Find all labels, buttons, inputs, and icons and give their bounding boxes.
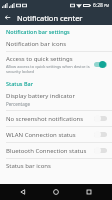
staticText: Notification bar settings xyxy=(6,28,70,35)
staticText: Display battery indicator xyxy=(6,92,75,100)
staticText: 6:28 xyxy=(93,2,103,9)
staticText: PM xyxy=(104,3,110,8)
staticText: Notification bar icons xyxy=(6,40,67,48)
button[interactable]: Back xyxy=(13,184,33,200)
button[interactable]: Notification bar icons xyxy=(0,37,112,51)
button[interactable]: WLAN Connection status xyxy=(0,127,112,142)
staticText: Status Bar xyxy=(6,80,34,87)
staticText: Percentage xyxy=(6,101,30,107)
staticText: Allow access to quick settings when devi… xyxy=(6,64,90,74)
button[interactable]: Display battery indicator xyxy=(0,89,112,110)
button[interactable]: Home xyxy=(46,184,66,200)
staticText: Access to quick settings xyxy=(6,55,73,63)
staticText: No screenshot notifications xyxy=(6,115,84,123)
staticText: Notification center xyxy=(17,13,83,23)
staticText: Bluetooth Connection status xyxy=(6,147,87,155)
button[interactable]: Recent apps xyxy=(79,184,99,200)
button[interactable]: Access to quick settings xyxy=(0,52,112,77)
staticText: WLAN Connection status xyxy=(6,131,76,139)
button[interactable]: No screenshot notifications xyxy=(0,111,112,126)
button[interactable]: Bluetooth Connection status xyxy=(0,143,112,158)
staticText: Status bar icons xyxy=(6,162,51,170)
button[interactable]: Back xyxy=(0,10,15,25)
button[interactable]: Status bar icons xyxy=(0,159,112,173)
